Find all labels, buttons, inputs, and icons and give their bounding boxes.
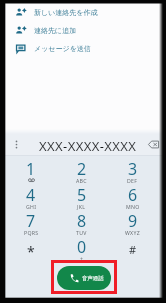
button[interactable]: 9 <box>107 208 158 234</box>
staticText: 5 <box>77 184 87 206</box>
staticText: # <box>129 242 137 257</box>
staticText: メッセージを送信 <box>34 44 91 53</box>
staticText: 1 <box>26 158 36 180</box>
staticText: + <box>80 255 84 262</box>
button[interactable]: More options <box>10 138 23 151</box>
staticText: 4 <box>26 184 36 206</box>
staticText: 連絡先に追加 <box>34 26 77 35</box>
staticText: ABC <box>76 177 87 184</box>
staticText: 音声通話 <box>82 275 104 282</box>
button[interactable]: 0 <box>56 234 107 260</box>
staticText: 3 <box>128 158 138 180</box>
staticText: 新しい連絡先を作成 <box>34 8 98 17</box>
staticText: TUV <box>76 229 87 236</box>
staticText: GHI <box>26 203 37 210</box>
staticText: WXYZ <box>125 229 140 236</box>
staticText: PQRS <box>24 229 39 236</box>
button[interactable]: 1 <box>6 156 56 182</box>
button[interactable]: 音声通話 <box>57 266 111 290</box>
button[interactable]: 8 <box>56 208 107 234</box>
staticText: 2 <box>77 158 87 180</box>
staticText: * <box>27 242 35 261</box>
staticText: 7 <box>26 210 36 232</box>
button[interactable]: 4 <box>6 182 56 208</box>
staticText: 8 <box>77 210 87 232</box>
staticText: MNO <box>126 203 140 210</box>
button[interactable]: 6 <box>107 182 158 208</box>
staticText: DEF <box>127 177 138 184</box>
staticText: XXX-XXXX-XXXX <box>39 137 137 155</box>
button[interactable]: メッセージを送信 <box>5 39 163 57</box>
button[interactable]: 新しい連絡先を作成 <box>5 3 163 21</box>
staticText: JKL <box>77 203 86 210</box>
button[interactable]: 5 <box>56 182 107 208</box>
button[interactable]: # <box>107 234 158 260</box>
button[interactable]: 連絡先に追加 <box>5 21 163 39</box>
staticText: 9 <box>128 210 138 232</box>
button[interactable]: Backspace <box>147 138 160 151</box>
button[interactable]: * <box>6 234 56 260</box>
button[interactable]: 7 <box>6 208 56 234</box>
button[interactable]: 2 <box>56 156 107 182</box>
button[interactable]: 3 <box>107 156 158 182</box>
staticText: 6 <box>128 184 138 206</box>
staticText: 0 <box>77 236 87 258</box>
